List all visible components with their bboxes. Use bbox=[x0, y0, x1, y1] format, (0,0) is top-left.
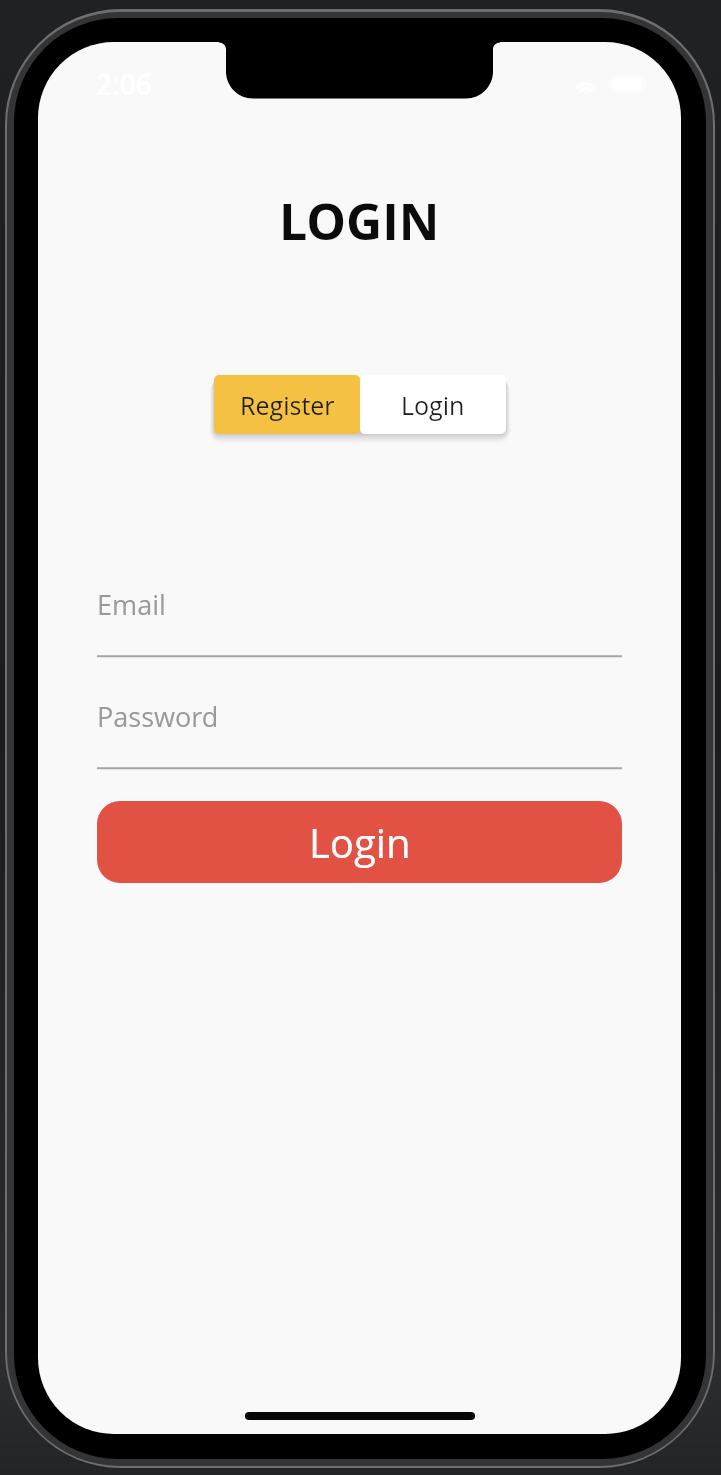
button[interactable]: Login bbox=[360, 375, 506, 434]
button[interactable]: Email bbox=[97, 562, 622, 657]
staticText: Login bbox=[309, 815, 411, 869]
staticText: Login bbox=[401, 388, 465, 422]
button[interactable]: Login bbox=[97, 801, 622, 883]
staticText: Register bbox=[240, 388, 335, 422]
staticText: Password bbox=[97, 698, 219, 735]
button[interactable]: Password bbox=[97, 674, 622, 769]
staticText: Email bbox=[97, 586, 166, 623]
button[interactable]: Register bbox=[214, 375, 360, 434]
staticText: LOGIN bbox=[279, 187, 440, 255]
